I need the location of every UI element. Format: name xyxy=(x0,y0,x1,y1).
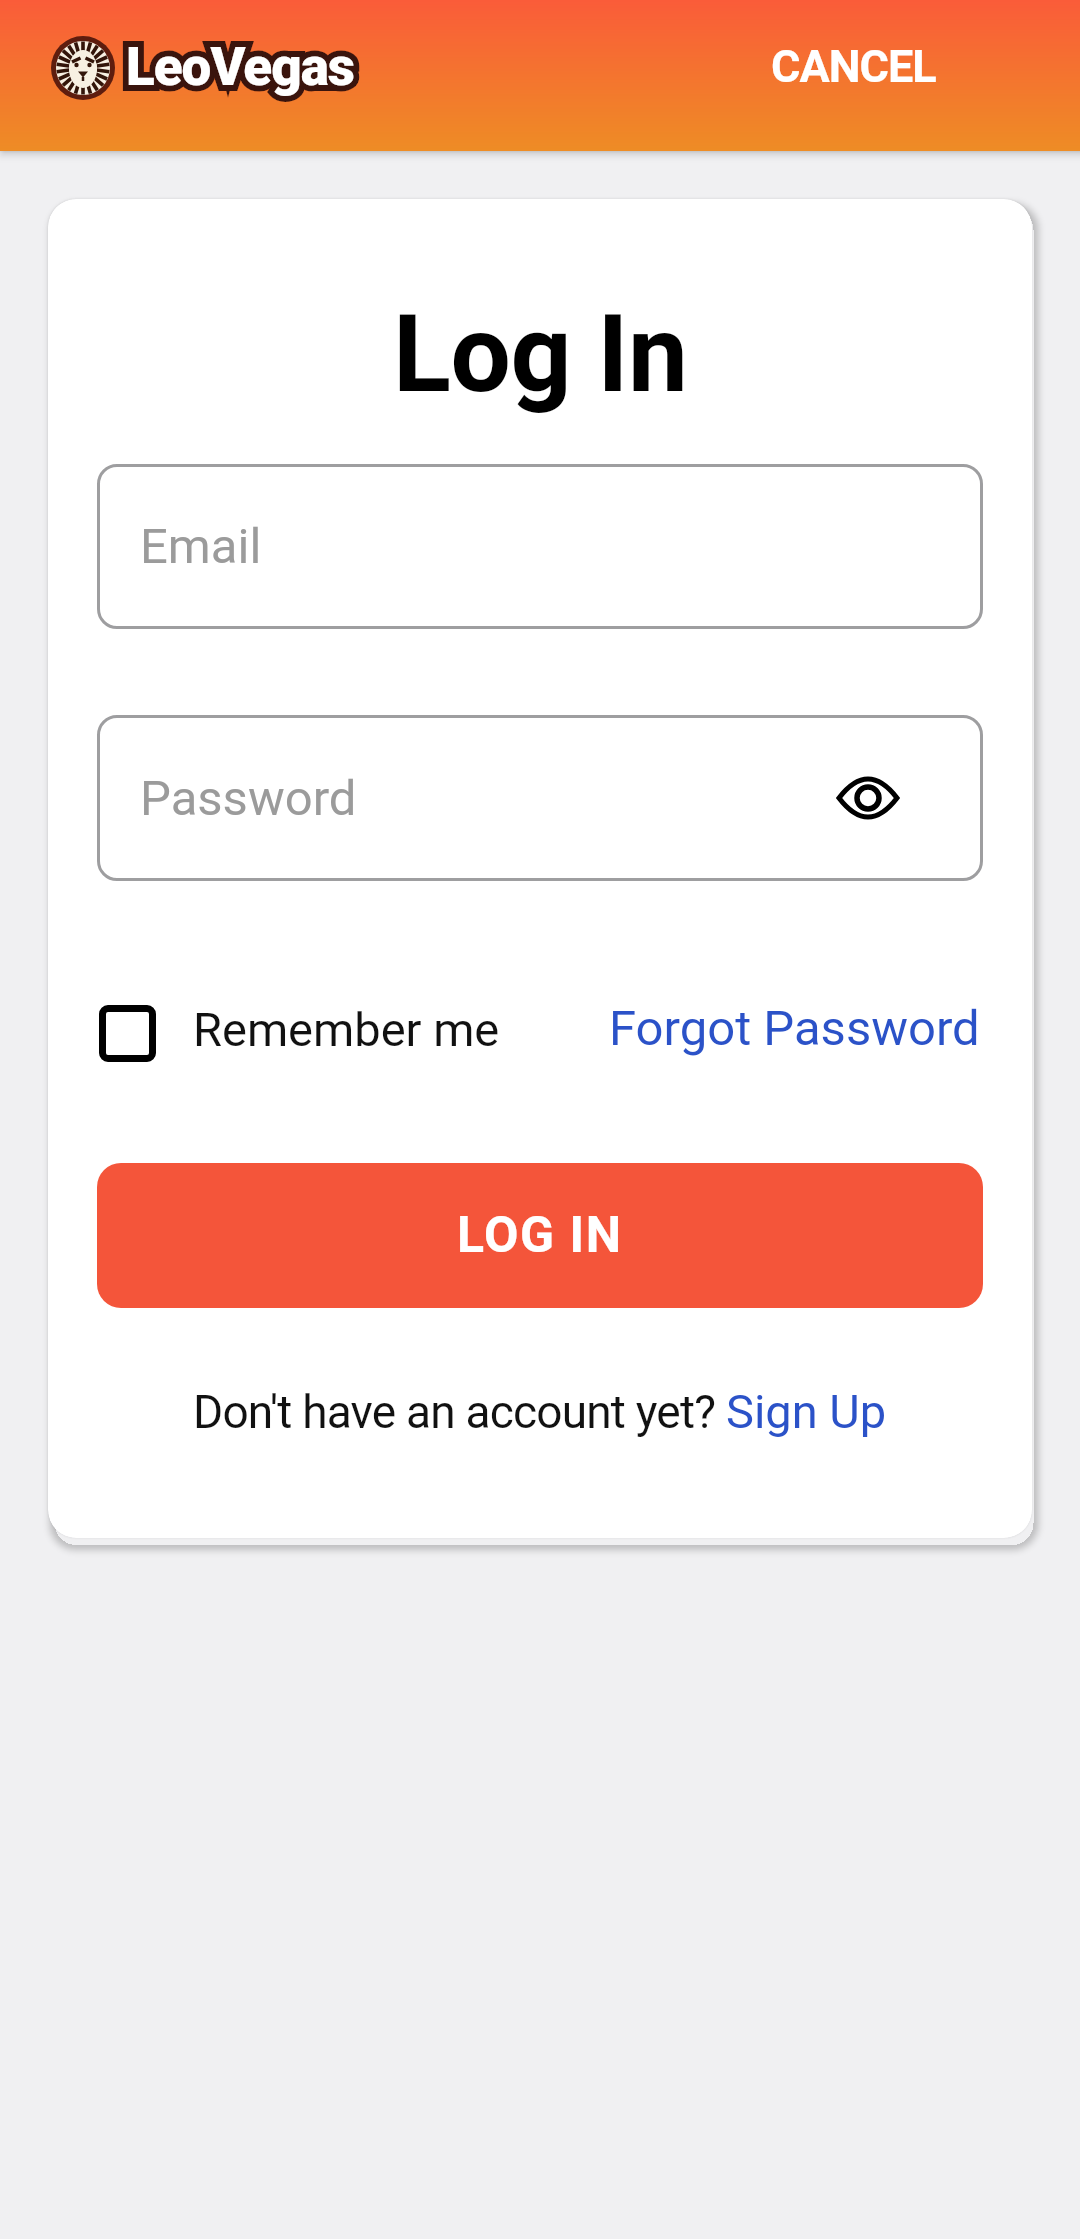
staticText: Sign Up xyxy=(726,1384,887,1439)
staticText: Password xyxy=(140,770,357,827)
staticText: Remember me xyxy=(193,1002,500,1057)
button[interactable]: Sign Up xyxy=(726,1384,887,1439)
button[interactable]: LOG IN xyxy=(97,1163,983,1308)
staticText: LOG IN xyxy=(457,1206,623,1265)
staticText: LeoVegas xyxy=(126,36,355,98)
staticText: LeoVegas xyxy=(126,36,355,98)
staticText: Log In xyxy=(393,292,688,417)
button[interactable]: Email xyxy=(97,464,983,629)
button[interactable] xyxy=(837,775,899,821)
button[interactable]: CANCEL xyxy=(747,20,960,113)
staticText: CANCEL xyxy=(771,40,936,93)
button[interactable]: Forgot Password xyxy=(609,1000,980,1057)
button[interactable]: Remember me xyxy=(99,1005,500,1062)
staticText: Don't have an account yet? xyxy=(193,1385,726,1439)
staticText: Forgot Password xyxy=(609,1000,980,1057)
staticText: Email xyxy=(140,518,262,575)
button[interactable]: Password xyxy=(97,715,983,881)
